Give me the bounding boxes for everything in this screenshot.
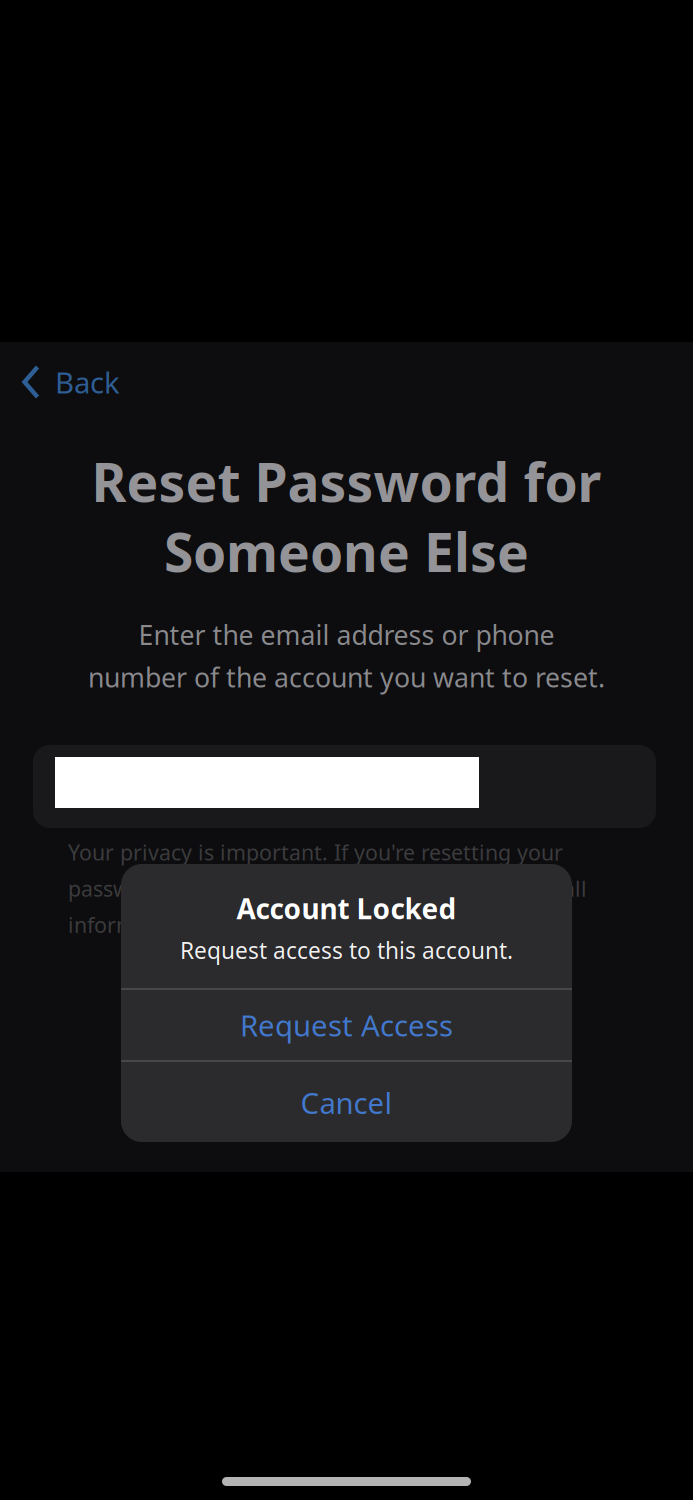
staticText: information and the right to do so.: [68, 911, 420, 939]
staticText: number of the account you want to reset.: [88, 659, 605, 695]
staticText: Request Access: [240, 1005, 453, 1044]
button[interactable]: Cancel: [121, 1062, 572, 1143]
staticText: Reset Password for: [91, 446, 601, 517]
button[interactable]: Back: [22, 352, 232, 412]
staticText: password for someone else, make sure you…: [68, 874, 587, 903]
staticText: Your privacy is important. If you're res…: [68, 838, 563, 866]
staticText: Enter the email address or phone: [138, 617, 554, 652]
staticText: Request access to this account.: [180, 935, 513, 965]
button[interactable]: Request Access: [121, 990, 572, 1060]
staticText: Someone Else: [164, 516, 529, 587]
staticText: Back: [55, 362, 120, 401]
button[interactable]: Email address or phone number: [33, 745, 656, 828]
staticText: Cancel: [300, 1083, 392, 1122]
staticText: Account Locked: [236, 890, 456, 927]
